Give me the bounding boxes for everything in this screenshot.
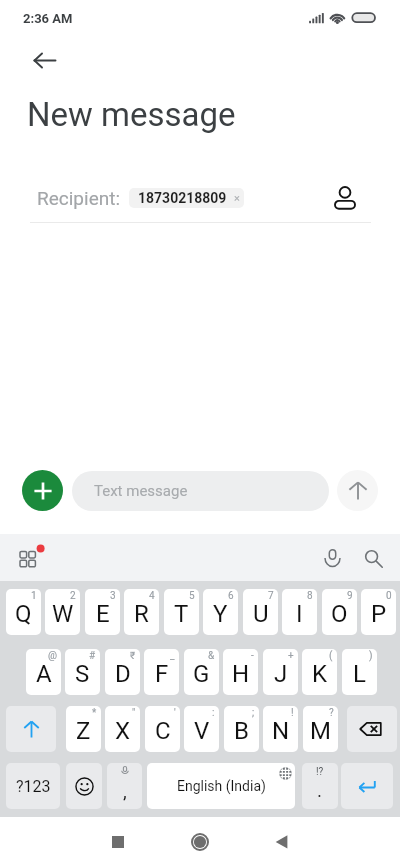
button[interactable]: Y: [203, 589, 238, 635]
button[interactable]: V: [184, 706, 219, 752]
staticText: K: [312, 660, 328, 688]
button[interactable]: E: [85, 589, 120, 635]
staticText: @: [48, 650, 57, 662]
button[interactable]: Recent apps: [98, 817, 138, 866]
button[interactable]: B: [224, 706, 259, 752]
staticText: 8: [307, 590, 313, 602]
staticText: *: [92, 707, 97, 719]
staticText: New message: [27, 95, 236, 134]
staticText: ": [132, 707, 136, 719]
staticText: 1: [31, 590, 37, 602]
button[interactable]: L: [342, 649, 377, 695]
staticText: +: [288, 650, 294, 662]
button[interactable]: J: [263, 649, 298, 695]
button[interactable]: Choose contact: [330, 183, 360, 213]
button[interactable]: Z: [66, 706, 101, 752]
button[interactable]: C: [145, 706, 180, 752]
staticText: N: [272, 717, 290, 745]
staticText: ): [369, 650, 373, 662]
button[interactable]: Emoji: [66, 763, 102, 809]
button[interactable]: D: [105, 649, 140, 695]
staticText: #: [89, 650, 96, 662]
staticText: Y: [213, 600, 228, 628]
staticText: U: [253, 600, 269, 628]
staticText: G: [193, 660, 210, 688]
staticText: !: [291, 707, 294, 719]
button[interactable]: Shift: [6, 706, 56, 752]
staticText: ,: [123, 780, 127, 802]
staticText: ;: [252, 707, 255, 719]
button[interactable]: English (India): [147, 763, 295, 809]
button[interactable]: H: [223, 649, 258, 695]
button[interactable]: A: [26, 649, 61, 695]
button[interactable]: Home: [180, 817, 220, 866]
button[interactable]: R: [124, 589, 159, 635]
staticText: English (India): [177, 778, 266, 794]
button[interactable]: G: [184, 649, 219, 695]
staticText: 2: [70, 590, 76, 602]
button[interactable]: .: [302, 763, 338, 809]
staticText: V: [194, 717, 210, 745]
button[interactable]: W: [45, 589, 80, 635]
button[interactable]: T: [164, 589, 199, 635]
staticText: P: [371, 600, 387, 628]
staticText: 7: [268, 590, 274, 602]
staticText: L: [353, 660, 366, 688]
button[interactable]: Send: [337, 470, 378, 511]
staticText: M: [310, 717, 331, 745]
button[interactable]: O: [322, 589, 357, 635]
button[interactable]: Enter: [341, 763, 393, 809]
button[interactable]: M: [303, 706, 338, 752]
button[interactable]: 18730218809: [129, 188, 244, 208]
button[interactable]: Back: [21, 36, 69, 84]
button[interactable]: Search: [357, 542, 389, 574]
staticText: Z: [76, 717, 91, 745]
button[interactable]: K: [302, 649, 337, 695]
staticText: R: [134, 600, 149, 628]
button[interactable]: ?123: [6, 763, 60, 809]
staticText: O: [331, 600, 348, 628]
staticText: T: [174, 600, 189, 628]
button[interactable]: Voice input: [316, 542, 348, 574]
staticText: 6: [228, 590, 234, 602]
button[interactable]: Q: [6, 589, 41, 635]
staticText: ?123: [16, 777, 51, 796]
button[interactable]: Text message: [72, 471, 329, 511]
button[interactable]: I: [282, 589, 317, 635]
button[interactable]: P: [361, 589, 396, 635]
staticText: !?: [316, 766, 324, 778]
staticText: &: [208, 650, 215, 662]
staticText: 2:36 AM: [23, 11, 73, 26]
staticText: B: [234, 717, 249, 745]
button[interactable]: Add attachment: [22, 470, 63, 511]
staticText: 18730218809: [138, 190, 227, 206]
staticText: I: [296, 600, 303, 628]
button[interactable]: Back: [262, 817, 302, 866]
staticText: ': [174, 707, 176, 719]
staticText: J: [274, 660, 288, 688]
staticText: 0: [386, 590, 392, 602]
staticText: D: [115, 660, 131, 688]
staticText: .: [317, 779, 323, 801]
staticText: -: [251, 650, 254, 662]
staticText: 5: [189, 590, 195, 602]
staticText: (: [329, 650, 333, 662]
staticText: Q: [15, 600, 32, 628]
staticText: :: [212, 707, 215, 719]
staticText: ×: [234, 192, 240, 205]
button[interactable]: X: [105, 706, 140, 752]
button[interactable]: U: [243, 589, 278, 635]
button[interactable]: ,: [107, 763, 142, 809]
button[interactable]: Apps: [13, 541, 47, 575]
staticText: F: [155, 660, 169, 688]
button[interactable]: Backspace: [347, 706, 397, 752]
button[interactable]: F: [144, 649, 179, 695]
staticText: C: [155, 717, 171, 745]
staticText: A: [36, 660, 52, 688]
button[interactable]: N: [263, 706, 298, 752]
staticText: E: [96, 600, 110, 628]
button[interactable]: S: [65, 649, 100, 695]
staticText: 4: [149, 590, 155, 602]
staticText: X: [115, 717, 131, 745]
staticText: S: [75, 660, 90, 688]
